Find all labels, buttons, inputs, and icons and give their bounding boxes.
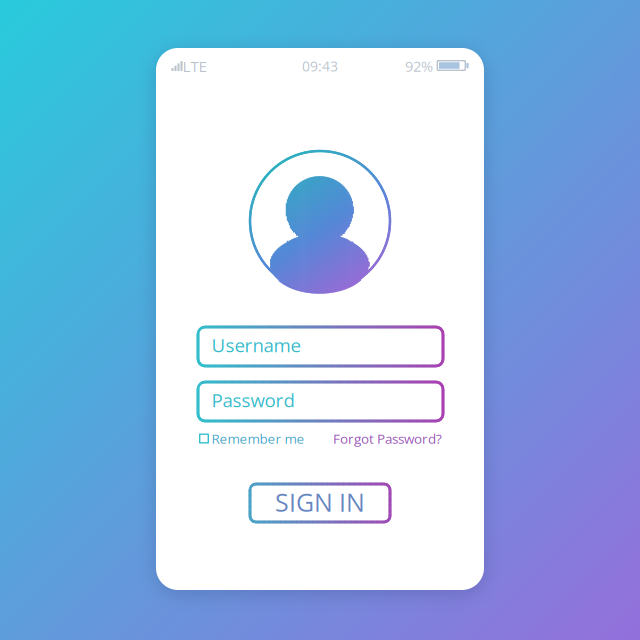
staticText: LTE bbox=[182, 56, 207, 76]
staticText: Username bbox=[211, 332, 300, 358]
button[interactable]: Password bbox=[0, 0, 640, 640]
button[interactable]: Forgot Password? bbox=[0, 0, 640, 640]
button[interactable]: Username bbox=[0, 0, 640, 640]
staticText: SIGN IN bbox=[275, 485, 365, 519]
button[interactable]: Remember me bbox=[0, 0, 640, 640]
staticText: Forgot Password? bbox=[333, 429, 442, 448]
button[interactable]: SIGN IN bbox=[0, 0, 640, 640]
staticText: Password bbox=[211, 387, 294, 413]
staticText: 09:43 bbox=[302, 56, 338, 76]
staticText: Remember me bbox=[211, 429, 304, 448]
staticText: 92% bbox=[405, 56, 433, 76]
